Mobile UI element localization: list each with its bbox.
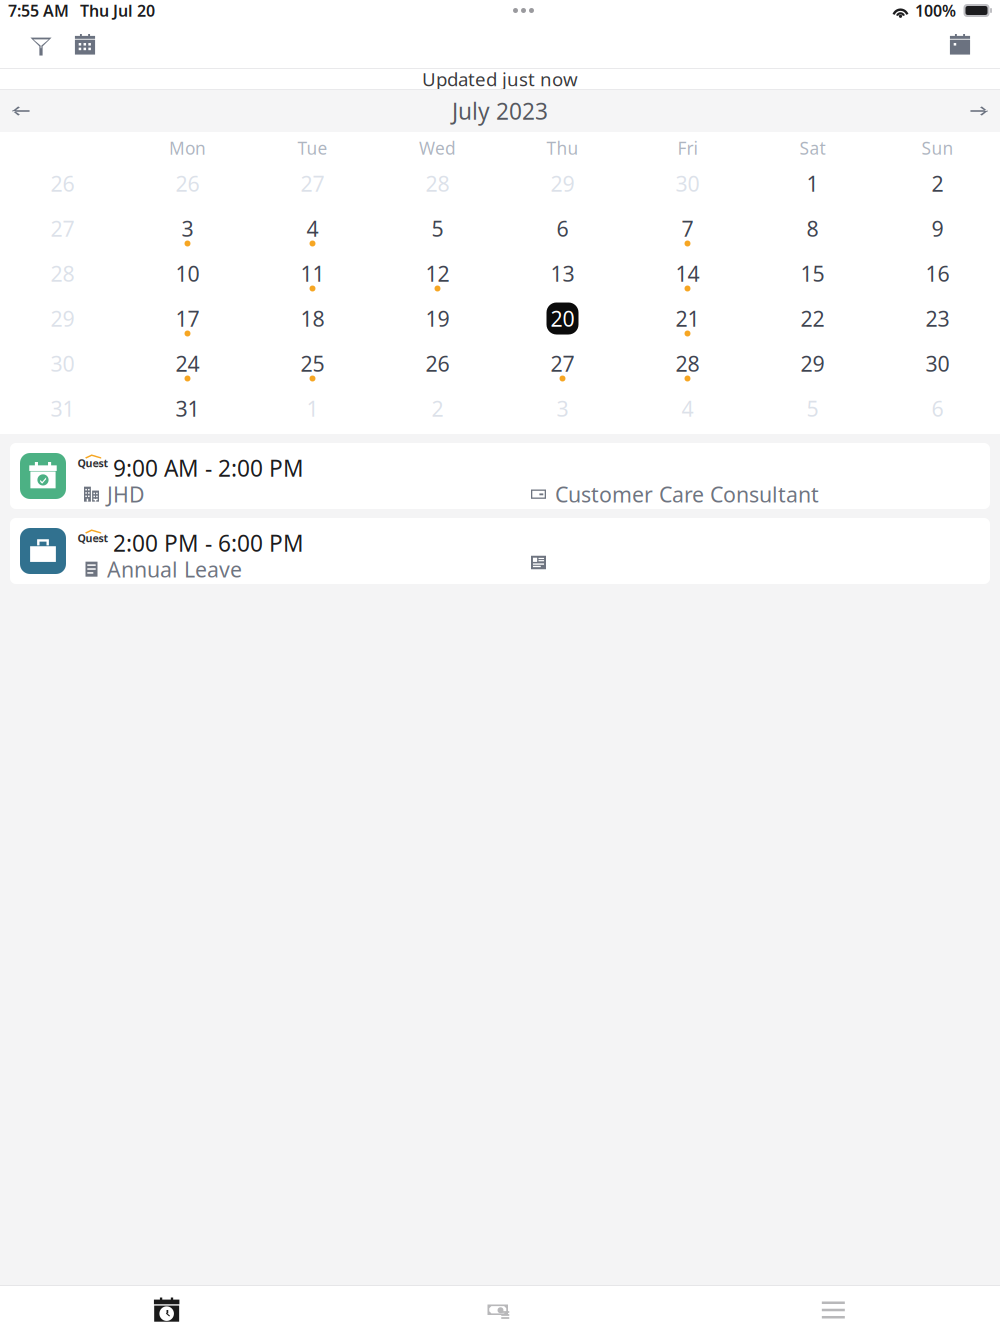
button[interactable]: 8 <box>750 209 875 254</box>
button[interactable]: Schedule <box>0 1286 333 1334</box>
staticText: 9 <box>931 214 943 243</box>
staticText: Customer Care Consultant <box>555 480 819 508</box>
button[interactable]: Jump to today <box>938 22 982 66</box>
button[interactable]: 1 <box>750 164 875 209</box>
staticText: 9:00 AM - 2:00 PM <box>113 453 304 483</box>
button[interactable]: 29 <box>500 164 625 209</box>
button[interactable]: 5 <box>750 389 875 434</box>
staticText: 12 <box>425 259 449 288</box>
staticText: 26 <box>50 169 74 198</box>
staticText: 10 <box>175 259 199 288</box>
staticText: 22 <box>800 304 824 333</box>
button[interactable]: 6 <box>875 389 1000 434</box>
button[interactable]: 21 <box>625 299 750 344</box>
button[interactable]: 31 <box>125 389 250 434</box>
staticText: 8 <box>806 214 818 243</box>
staticText: 28 <box>50 259 74 288</box>
staticText: 6 <box>931 394 943 423</box>
staticText: 23 <box>925 304 949 333</box>
button[interactable]: Quest <box>10 443 990 509</box>
staticText: 27 <box>300 169 324 198</box>
staticText: Updated just now <box>422 67 578 91</box>
button[interactable]: Quest <box>10 518 990 584</box>
staticText: Quest <box>77 531 108 545</box>
staticText: 1 <box>306 394 318 423</box>
button[interactable]: 14 <box>625 254 750 299</box>
button[interactable]: 27 <box>250 164 375 209</box>
button[interactable]: 5 <box>375 209 500 254</box>
button[interactable]: 22 <box>750 299 875 344</box>
button[interactable]: 26 <box>375 344 500 389</box>
button[interactable]: 30 <box>625 164 750 209</box>
staticText: JHD <box>107 480 145 508</box>
button[interactable]: More <box>667 1286 1000 1334</box>
staticText: 30 <box>50 349 74 378</box>
staticText: 26 <box>175 169 199 198</box>
staticText: 29 <box>50 304 74 333</box>
button[interactable]: 30 <box>875 344 1000 389</box>
staticText: 4 <box>306 214 318 243</box>
staticText: 5 <box>806 394 818 423</box>
staticText: 5 <box>431 214 443 243</box>
button[interactable]: 2 <box>375 389 500 434</box>
button[interactable]: 20 <box>500 299 625 344</box>
button[interactable]: Filter <box>19 22 63 66</box>
staticText: 7:55 AM <box>8 0 69 21</box>
staticText: Thu <box>546 136 578 159</box>
button[interactable]: 11 <box>250 254 375 299</box>
button[interactable]: 27 <box>500 344 625 389</box>
button[interactable]: 16 <box>875 254 1000 299</box>
staticText: 31 <box>175 394 199 423</box>
staticText: 19 <box>425 304 449 333</box>
button[interactable]: 15 <box>750 254 875 299</box>
button[interactable]: 13 <box>500 254 625 299</box>
staticText: Fri <box>677 136 697 159</box>
staticText: July 2023 <box>452 96 548 126</box>
button[interactable]: 28 <box>375 164 500 209</box>
button[interactable]: 3 <box>500 389 625 434</box>
staticText: 28 <box>425 169 449 198</box>
button[interactable]: 17 <box>125 299 250 344</box>
staticText: 3 <box>181 214 193 243</box>
button[interactable]: 19 <box>375 299 500 344</box>
staticText: 2 <box>931 169 943 198</box>
staticText: 21 <box>675 304 699 333</box>
button[interactable]: 26 <box>125 164 250 209</box>
button[interactable]: 29 <box>750 344 875 389</box>
staticText: 31 <box>50 394 74 423</box>
button[interactable]: Pay <box>333 1286 667 1334</box>
staticText: 14 <box>675 259 699 288</box>
staticText: 30 <box>675 169 699 198</box>
staticText: 27 <box>550 349 574 378</box>
button[interactable]: 18 <box>250 299 375 344</box>
button[interactable]: 10 <box>125 254 250 299</box>
button[interactable]: 7 <box>625 209 750 254</box>
button[interactable]: 4 <box>625 389 750 434</box>
staticText: 20 <box>550 304 574 333</box>
button[interactable]: Previous month <box>1 90 41 132</box>
button[interactable]: 23 <box>875 299 1000 344</box>
button[interactable]: 6 <box>500 209 625 254</box>
button[interactable]: 12 <box>375 254 500 299</box>
button[interactable]: 3 <box>125 209 250 254</box>
button[interactable]: 9 <box>875 209 1000 254</box>
staticText: 30 <box>925 349 949 378</box>
button[interactable]: 28 <box>625 344 750 389</box>
staticText: 13 <box>550 259 574 288</box>
staticText: Tue <box>297 136 327 159</box>
button[interactable]: Change calendar view <box>63 22 107 66</box>
button[interactable]: 24 <box>125 344 250 389</box>
button[interactable]: 2 <box>875 164 1000 209</box>
staticText: Wed <box>419 136 456 159</box>
button[interactable]: Next month <box>959 90 999 132</box>
staticText: Quest <box>77 456 108 470</box>
button[interactable]: 25 <box>250 344 375 389</box>
staticText: 11 <box>300 259 324 288</box>
staticText: Annual Leave <box>107 555 242 583</box>
staticText: 2:00 PM - 6:00 PM <box>113 528 304 558</box>
staticText: 4 <box>681 394 693 423</box>
button[interactable]: 4 <box>250 209 375 254</box>
staticText: 28 <box>675 349 699 378</box>
staticText: 17 <box>175 304 199 333</box>
